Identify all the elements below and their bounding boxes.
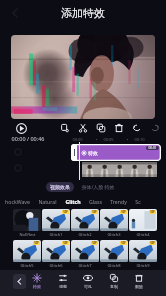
staticText: 特效 xyxy=(88,150,98,156)
button[interactable]: VIP xyxy=(129,240,157,268)
staticText: VIP xyxy=(121,210,126,214)
button[interactable]: VIP xyxy=(129,209,157,237)
button[interactable]: NoEffect xyxy=(13,209,41,237)
staticText: Natural xyxy=(38,198,57,205)
staticText: hockWave xyxy=(5,198,30,205)
staticText: 复制 xyxy=(110,284,118,289)
button[interactable]: Glass xyxy=(85,198,106,205)
button[interactable]: VIP xyxy=(100,240,128,268)
staticText: Glitch5 xyxy=(20,263,34,268)
staticText: VIP xyxy=(63,241,68,245)
button[interactable]: VIP xyxy=(13,240,41,268)
staticText: Glitch2 xyxy=(78,232,92,237)
button[interactable]: 特效 xyxy=(25,273,49,289)
staticText: VIP xyxy=(150,210,155,214)
button[interactable]: cut xyxy=(77,122,89,134)
button[interactable]: Back xyxy=(13,274,26,289)
button[interactable]: hockWave xyxy=(1,198,34,205)
staticText: Trendy xyxy=(110,198,127,205)
button[interactable]: Back xyxy=(9,7,21,19)
staticText: 特效 xyxy=(33,284,41,289)
staticText: VIP xyxy=(121,241,126,245)
staticText: 00:00 xyxy=(72,137,83,142)
staticText: NoEffect xyxy=(19,232,36,237)
button[interactable]: dup xyxy=(59,122,71,134)
button[interactable]: Trendy xyxy=(106,198,131,205)
staticText: VIP xyxy=(150,241,155,245)
button[interactable]: redo xyxy=(149,122,161,134)
button[interactable]: 特效 xyxy=(72,145,160,160)
staticText: Glitch6 xyxy=(49,263,63,268)
staticText: VIP xyxy=(63,210,68,214)
button[interactable]: 调整 xyxy=(51,273,75,289)
button[interactable]: VIP xyxy=(42,240,70,268)
staticText: Glitch4 xyxy=(136,232,150,237)
button[interactable]: VIP xyxy=(71,240,99,268)
staticText: 添加特效 xyxy=(61,6,105,20)
button[interactable]: 复制 xyxy=(102,273,126,289)
staticText: Glass xyxy=(89,198,102,205)
button[interactable]: VIP xyxy=(71,209,99,237)
button[interactable]: VIP xyxy=(100,209,128,237)
button[interactable]: trash xyxy=(113,122,125,134)
staticText: Glitch xyxy=(65,198,81,205)
staticText: 00:01 xyxy=(148,146,157,150)
staticText: 00:10 xyxy=(134,137,145,142)
staticText: Glitch9 xyxy=(136,263,150,268)
staticText: Glitch8 xyxy=(107,263,121,268)
button[interactable]: Natural xyxy=(34,198,61,205)
button[interactable]: 删除 xyxy=(127,273,151,289)
staticText: Glitch7 xyxy=(78,263,92,268)
button[interactable]: Play xyxy=(16,123,27,134)
button[interactable]: Glitch xyxy=(61,198,85,205)
staticText: 可见 xyxy=(84,284,92,289)
button[interactable]: undo xyxy=(131,122,143,134)
staticText: VIP xyxy=(92,210,97,214)
staticText: Glitch3 xyxy=(107,232,121,237)
staticText: 删除 xyxy=(135,284,143,289)
staticText: 00:00 / 00:46 xyxy=(11,135,45,142)
staticText: 00:05 xyxy=(103,137,114,142)
button[interactable]: 可见 xyxy=(76,273,100,289)
staticText: 视频效果 xyxy=(50,184,70,190)
staticText: VIP xyxy=(34,241,39,245)
staticText: Sc xyxy=(135,198,141,205)
staticText: 身体/人脸 特效 xyxy=(81,184,115,191)
button[interactable]: Sc xyxy=(131,198,145,205)
staticText: VIP xyxy=(92,241,97,245)
button[interactable]: VIP xyxy=(42,209,70,237)
button[interactable]: 身体/人脸 特效 xyxy=(79,183,117,192)
staticText: 调整 xyxy=(59,284,67,289)
button[interactable]: copy xyxy=(95,122,107,134)
staticText: Glitch1 xyxy=(49,232,63,237)
button[interactable]: 视频效果 xyxy=(50,184,70,190)
